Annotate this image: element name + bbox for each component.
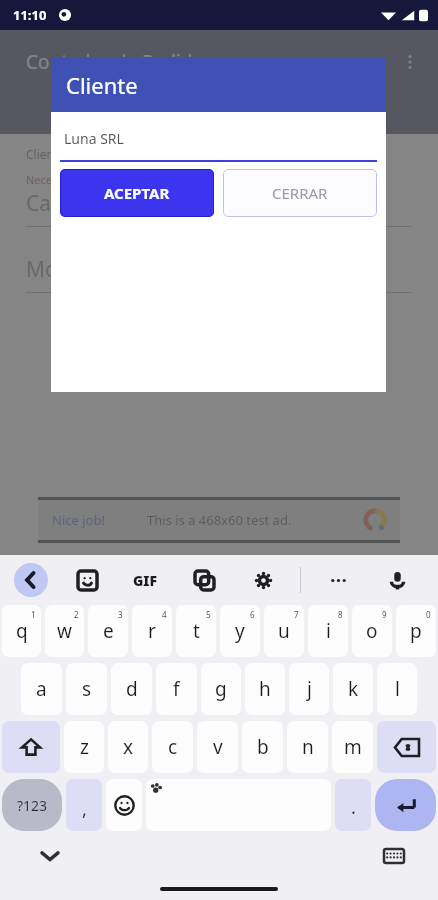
staticText: Cliente [26,146,66,162]
staticText: i [326,618,331,644]
staticText: q [16,618,28,644]
button[interactable]: Backspace [377,721,436,773]
button[interactable]: Translate [187,563,221,597]
button[interactable]: s [66,663,107,715]
button[interactable]: Settings [246,563,280,597]
button[interactable]: q [2,605,41,657]
staticText: Luna SRL [64,129,124,148]
button[interactable]: CERRAR [223,169,377,217]
button[interactable]: Hide keyboard [36,842,64,870]
staticText: m [344,734,362,760]
button[interactable]: a [21,663,62,715]
button[interactable]: y [220,605,260,657]
staticText: a [36,676,47,702]
staticText: Contador de Pedidos [26,49,214,75]
staticText: This is a 468x60 test ad. [147,511,292,529]
button[interactable]: ACEPTAR [60,169,214,217]
button[interactable]: t [176,605,216,657]
button[interactable]: Back [14,563,48,597]
staticText: ?123 [17,796,48,815]
button[interactable]: l [377,663,417,715]
staticText: j [307,676,312,702]
staticText: z [80,734,89,760]
staticText: v [213,734,223,760]
button[interactable]: Voice input [380,563,414,597]
staticText: h [259,676,271,702]
staticText: PEDIDO [85,105,134,123]
staticText: t [193,618,200,644]
staticText: 4 [162,609,167,620]
button[interactable]: GIF [129,567,162,594]
button[interactable]: i [308,605,348,657]
staticText: e [103,618,114,644]
button[interactable]: Shift [2,721,60,773]
button[interactable]: w [45,605,84,657]
staticText: Nice job! [52,511,105,529]
staticText: b [257,734,269,760]
staticText: 1 [31,609,36,620]
staticText: 11:10 [13,6,47,24]
button[interactable]: j [289,663,329,715]
button[interactable]: Emoji [106,779,142,831]
staticText: ACEPTAR [104,183,170,203]
staticText: LISTA PEDIDO [286,105,372,123]
button[interactable]: p [396,605,436,657]
staticText: 7 [294,609,299,620]
staticText: n [302,734,314,760]
staticText: Cliente [66,70,138,100]
staticText: s [82,676,92,702]
button[interactable]: Enter [375,779,436,831]
button[interactable]: z [64,721,104,773]
button[interactable]: x [108,721,148,773]
staticText: y [235,618,245,644]
button[interactable]: m [332,721,373,773]
staticText: x [123,734,134,760]
button[interactable]: c [152,721,193,773]
button[interactable]: PEDIDO [0,93,219,134]
staticText: o [366,618,378,644]
button[interactable]: More options [390,42,430,82]
staticText: k [348,676,359,702]
button[interactable]: ?123 [2,779,62,831]
button[interactable]: u [264,605,304,657]
staticText: w [57,618,72,644]
staticText: GIF [133,571,158,590]
button[interactable]: , [66,779,102,831]
button[interactable]: n [287,721,328,773]
staticText: 5 [206,609,211,620]
button[interactable]: Change keyboard [380,842,408,870]
button[interactable]: h [245,663,285,715]
button[interactable]: r [132,605,172,657]
staticText: 9 [382,609,387,620]
staticText: 3 [118,609,123,620]
button[interactable]: e [88,605,128,657]
button[interactable]: k [333,663,373,715]
staticText: Necesita un cliente [26,172,124,187]
button[interactable]: o [352,605,392,657]
staticText: 8 [338,609,343,620]
button[interactable]: . [335,779,371,831]
staticText: 6 [250,609,255,620]
staticText: r [148,618,156,644]
staticText: 2 [74,609,79,620]
staticText: Cantidad [26,189,115,218]
button[interactable]: d [111,663,152,715]
button[interactable]: f [156,663,197,715]
button[interactable]: More [321,563,355,597]
button[interactable]: v [197,721,238,773]
staticText: 0 [426,609,431,620]
button[interactable]: Stickers [70,563,104,597]
button[interactable]: Space [146,779,331,831]
button[interactable]: b [242,721,283,773]
staticText: p [410,618,422,644]
staticText: Monto [26,255,92,284]
staticText: d [126,676,138,702]
staticText: l [395,676,400,702]
staticText: . [351,795,356,820]
staticText: CERRAR [272,183,328,203]
button[interactable]: g [201,663,241,715]
staticText: g [215,676,227,702]
button[interactable]: LISTA PEDIDO [219,93,438,134]
staticText: u [278,618,290,644]
staticText: , [82,797,87,822]
